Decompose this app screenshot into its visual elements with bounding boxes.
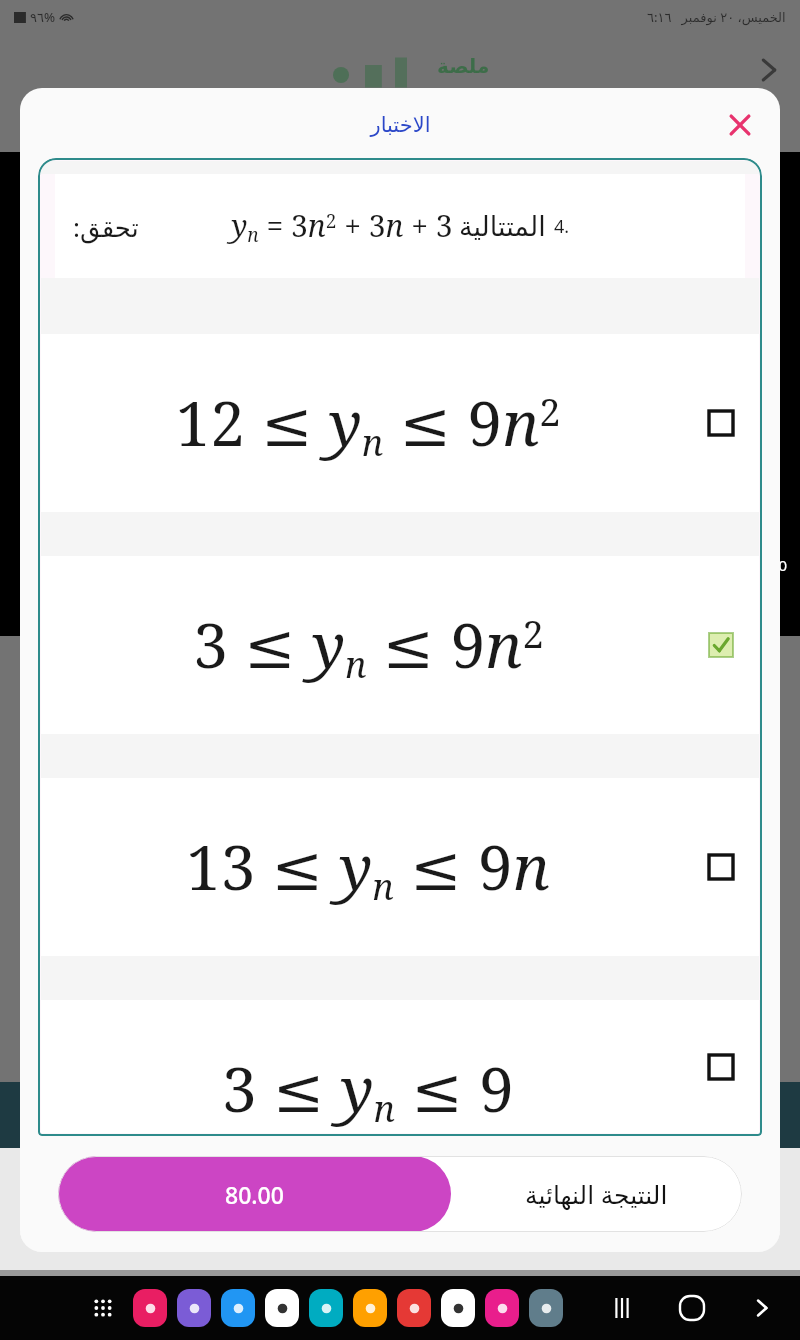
button[interactable]: 80.00 [58, 1156, 742, 1232]
button[interactable]: Selected answer [706, 630, 736, 660]
staticText: 4. [554, 214, 570, 239]
staticText: ملصة [437, 54, 490, 77]
staticText: الخميس، ٢٠ نوفمبر ٦:١٦ [647, 8, 786, 26]
button[interactable]: App [309, 1289, 343, 1327]
button[interactable]: Home [668, 1284, 716, 1332]
button[interactable]: Select answer [706, 1052, 736, 1082]
button[interactable]: Recent apps [598, 1284, 646, 1332]
button[interactable]: App [441, 1289, 475, 1327]
button[interactable]: Back [738, 1284, 786, 1332]
button[interactable]: App [353, 1289, 387, 1327]
staticText: 3 ≤ yn ≤ 9 [222, 1046, 514, 1132]
button[interactable]: App [177, 1289, 211, 1327]
button[interactable]: Next [750, 50, 790, 90]
staticText: 80.00 [225, 1179, 284, 1210]
button[interactable]: Select answer [706, 852, 736, 882]
button[interactable]: App [529, 1289, 563, 1327]
button[interactable]: Select answer [706, 408, 736, 438]
button[interactable]: 3 ≤ yn ≤ 9n2 [41, 556, 759, 734]
button[interactable]: App [485, 1289, 519, 1327]
button[interactable]: App [221, 1289, 255, 1327]
button[interactable]: App [133, 1289, 167, 1327]
staticText: النتيجة النهائية [525, 1177, 668, 1211]
button[interactable]: Apps [86, 1291, 120, 1325]
staticText: المتتالية [459, 211, 546, 242]
staticText: 00 [770, 555, 788, 575]
staticText: ٩٦% [30, 8, 56, 26]
button[interactable]: 3 ≤ yn ≤ 9 [41, 1000, 759, 1133]
staticText: yn = 3n2 + 3n + 3 [231, 205, 453, 247]
button[interactable]: 13 ≤ yn ≤ 9n [41, 778, 759, 956]
staticText: الاختبار [370, 113, 431, 137]
button[interactable]: App [265, 1289, 299, 1327]
staticText: 3 ≤ yn ≤ 9n2 [193, 602, 544, 688]
staticText: 13 ≤ yn ≤ 9n [186, 824, 550, 910]
button[interactable]: Close [718, 103, 762, 147]
staticText: 12 ≤ yn ≤ 9n2 [175, 380, 561, 466]
button[interactable]: App [397, 1289, 431, 1327]
staticText: :تحقق [73, 209, 139, 244]
button[interactable]: 12 ≤ yn ≤ 9n2 [41, 334, 759, 512]
